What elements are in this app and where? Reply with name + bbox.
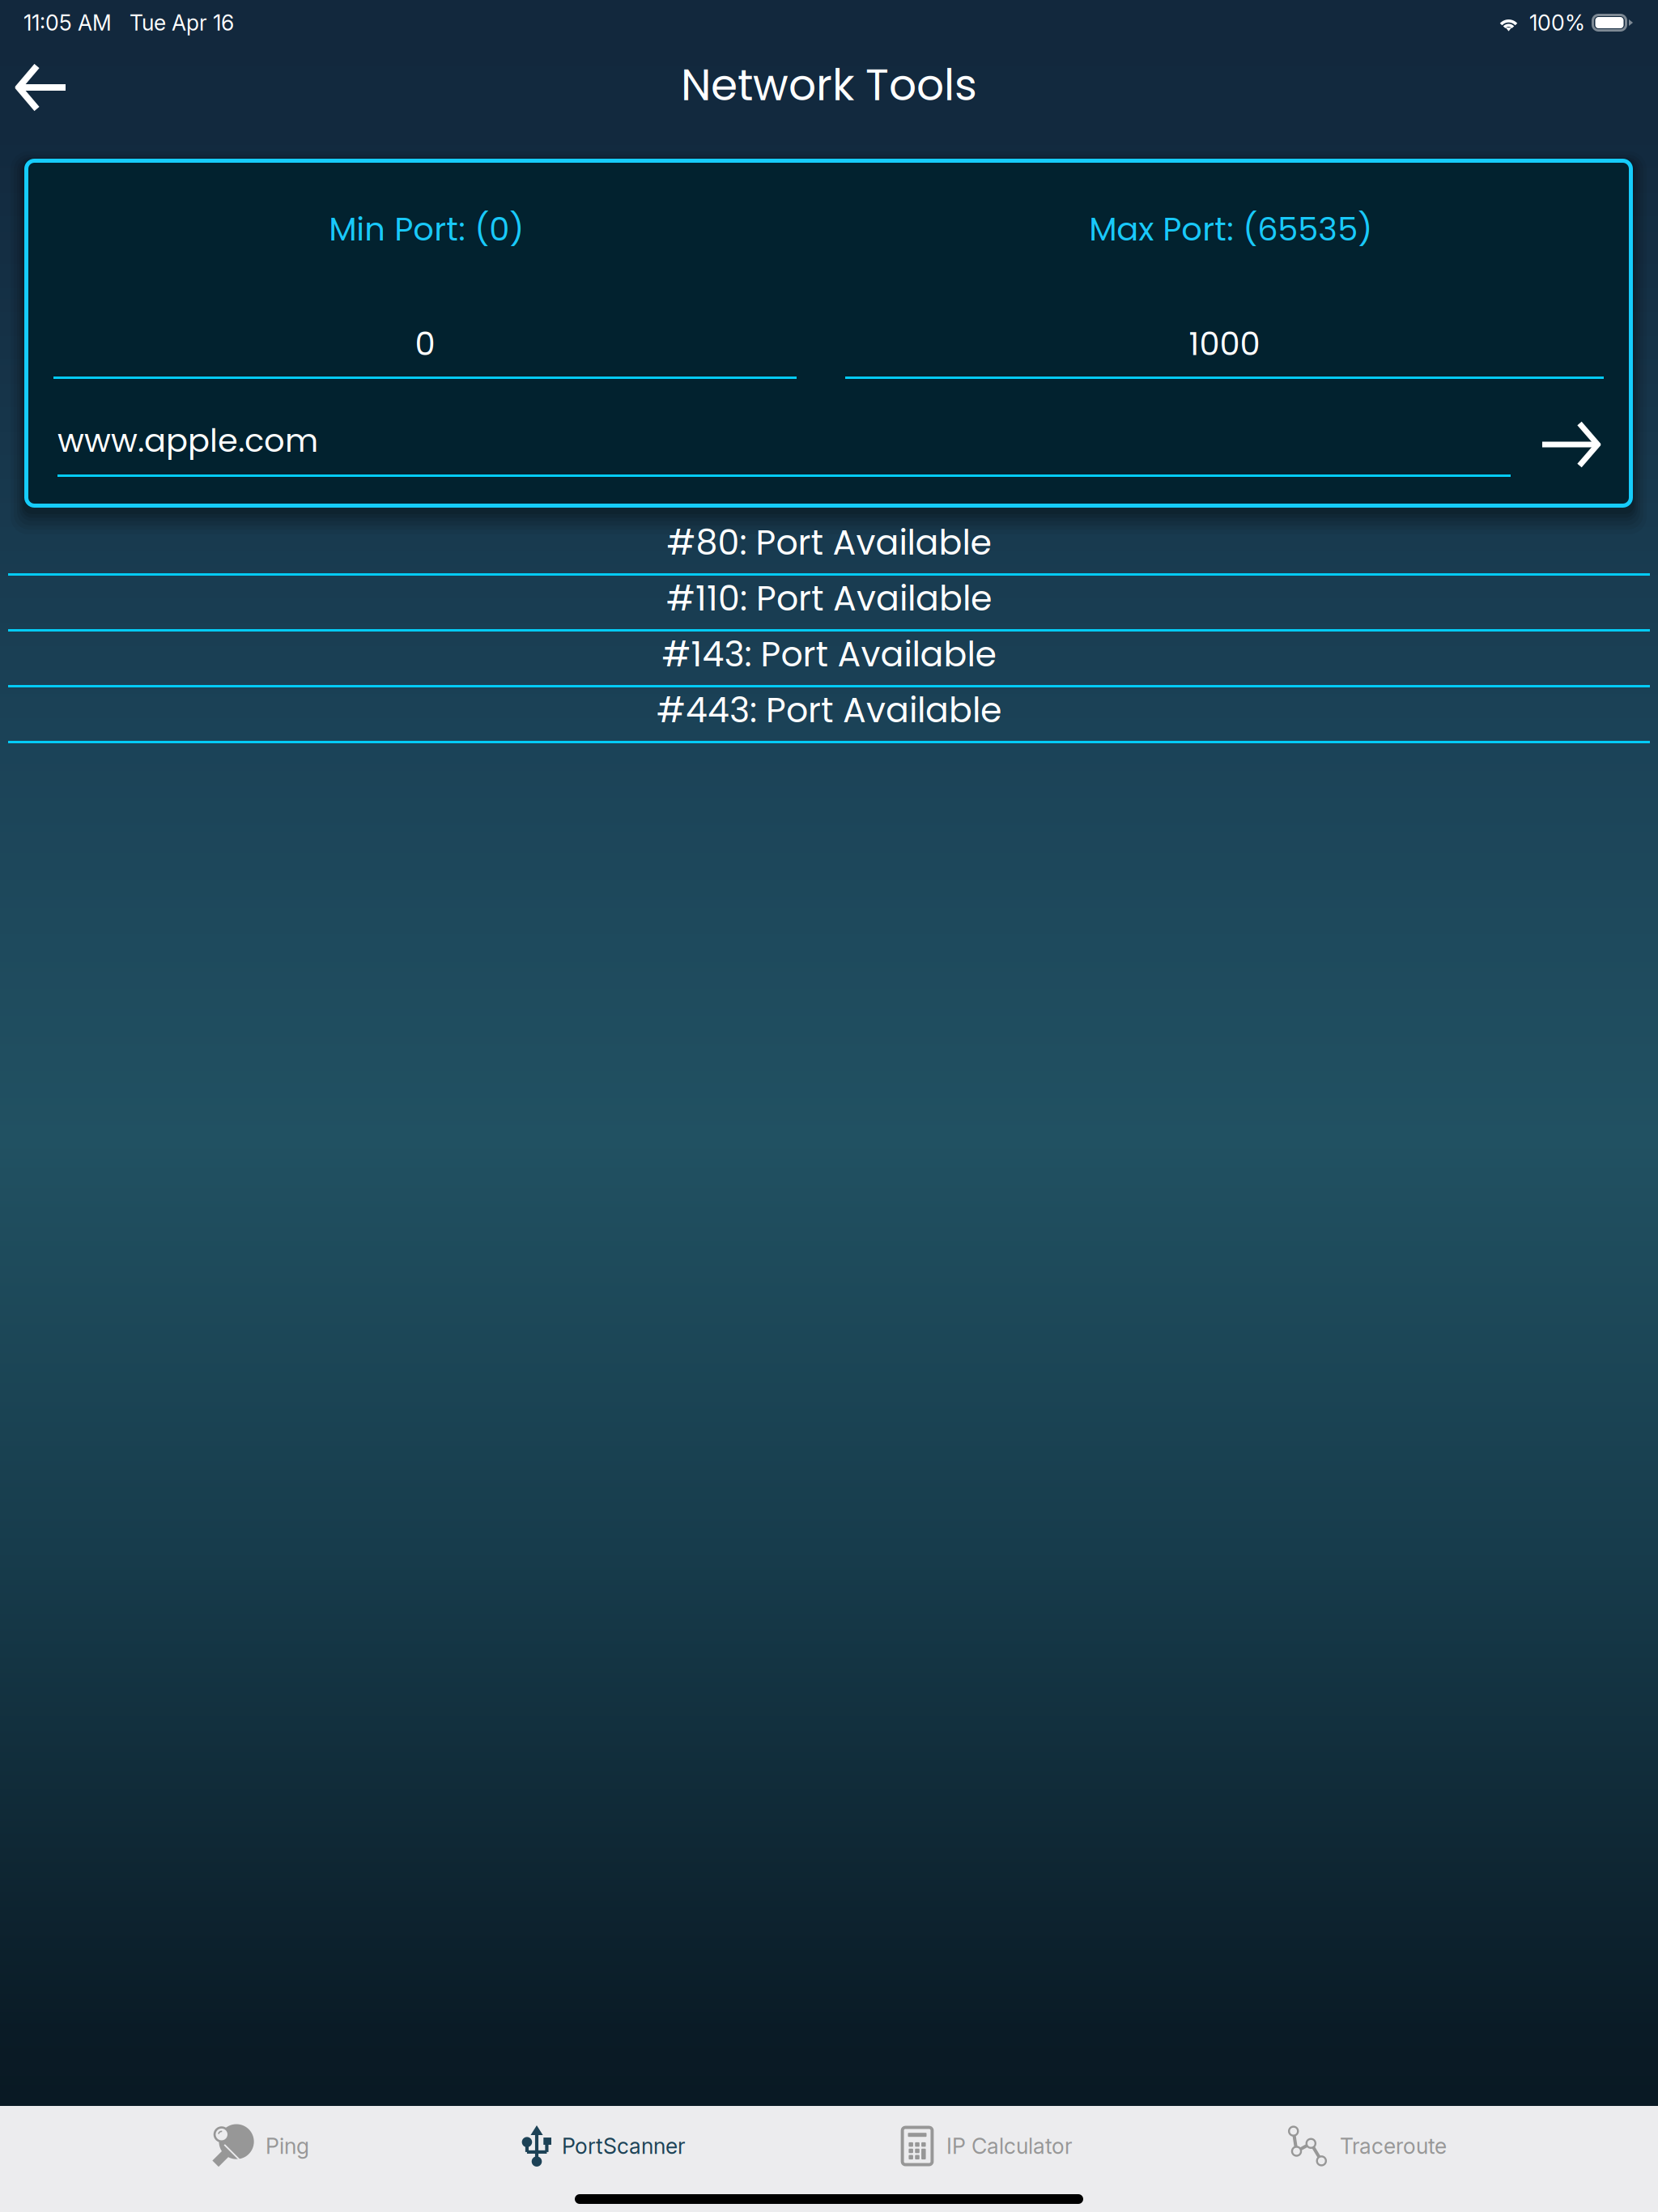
- button[interactable]: #80: Port Available: [0, 520, 1658, 576]
- button[interactable]: Ping: [211, 2106, 309, 2186]
- button[interactable]: #110: Port Available: [0, 576, 1658, 632]
- button[interactable]: #443: Port Available: [0, 687, 1658, 743]
- button[interactable]: PortScanner: [522, 2106, 686, 2186]
- staticText: 100%: [1529, 10, 1585, 36]
- staticText: Max Port: (65535): [1089, 206, 1372, 252]
- staticText: Traceroute: [1340, 2133, 1447, 2159]
- staticText: IP Calculator: [946, 2133, 1073, 2159]
- staticText: Tue Apr 16: [130, 10, 234, 36]
- staticText: #443: Port Available: [657, 686, 1001, 734]
- staticText: 11:05 AM: [23, 10, 112, 36]
- button[interactable]: IP Calculator: [899, 2106, 1073, 2186]
- button[interactable]: Scan ports: [1511, 423, 1608, 477]
- staticText: Network Tools: [681, 55, 977, 115]
- staticText: #143: Port Available: [662, 630, 996, 678]
- button[interactable]: Traceroute: [1286, 2106, 1447, 2186]
- button[interactable]: Back: [0, 46, 88, 158]
- staticText: 0: [415, 321, 435, 366]
- staticText: Min Port: (0): [329, 206, 524, 252]
- staticText: 1000: [1189, 321, 1260, 366]
- staticText: #110: Port Available: [666, 574, 992, 622]
- button[interactable]: #143: Port Available: [0, 632, 1658, 687]
- staticText: #80: Port Available: [667, 518, 991, 567]
- staticText: PortScanner: [562, 2133, 686, 2159]
- staticText: www.apple.com: [57, 418, 318, 463]
- staticText: Ping: [266, 2133, 309, 2159]
